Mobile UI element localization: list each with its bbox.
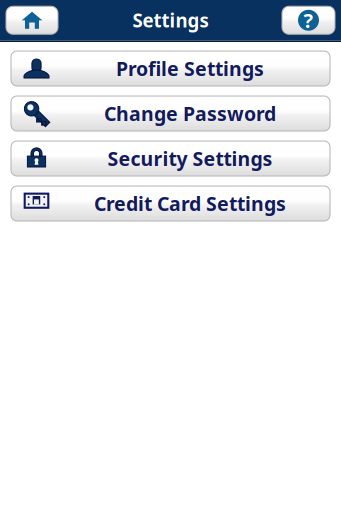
- staticText: Settings: [132, 8, 208, 33]
- staticText: Security Settings: [107, 145, 272, 172]
- staticText: Change Password: [104, 100, 276, 127]
- button[interactable]: Help: [282, 6, 335, 34]
- button[interactable]: Profile Settings: [11, 51, 330, 86]
- staticText: Credit Card Settings: [94, 190, 286, 217]
- button[interactable]: Change Password: [11, 96, 330, 131]
- button[interactable]: Security Settings: [11, 141, 330, 176]
- button[interactable]: Credit Card Settings: [11, 186, 330, 221]
- staticText: ?: [303, 7, 313, 34]
- button[interactable]: Home: [6, 6, 58, 34]
- staticText: Profile Settings: [116, 55, 264, 82]
